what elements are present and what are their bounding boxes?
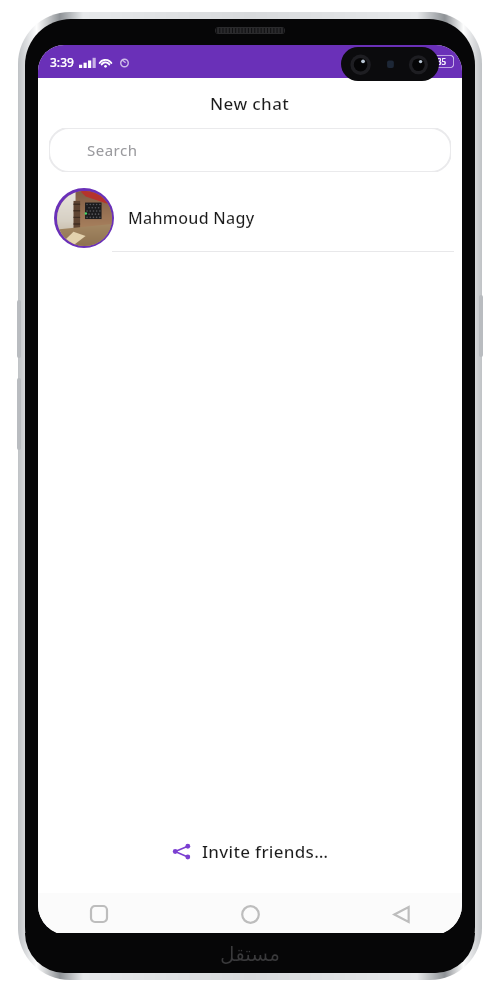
staticText: Invite friends… [202, 840, 329, 863]
button[interactable]: Recent apps [82, 897, 116, 931]
staticText: New chat [210, 92, 290, 115]
button[interactable]: Back [384, 897, 418, 931]
button[interactable]: Search [49, 128, 451, 172]
staticText: 3:39 [50, 54, 74, 70]
button[interactable]: Invite friends… [157, 832, 343, 871]
staticText: Search [87, 140, 138, 160]
button[interactable]: Home [233, 897, 267, 931]
staticText: Mahmoud Nagy [128, 207, 255, 229]
staticText: مستقل [220, 942, 280, 965]
staticText: 35 [437, 56, 447, 67]
button[interactable]: Mahmoud Nagy [38, 185, 462, 252]
